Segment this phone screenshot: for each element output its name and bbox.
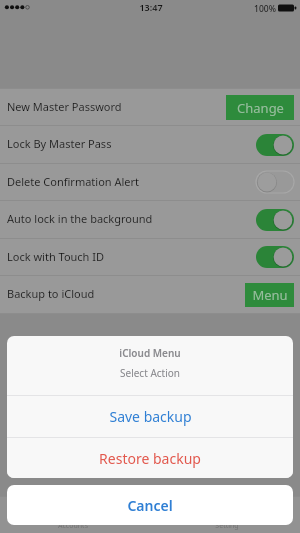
staticText: Lock with Touch ID [7, 249, 105, 264]
button[interactable]: Setting [180, 496, 274, 533]
button[interactable]: Accounts [26, 496, 120, 533]
button[interactable]: Restore backup [7, 438, 293, 478]
button[interactable]: Switch on [256, 134, 294, 156]
staticText: New Master Password [7, 99, 122, 114]
button[interactable]: New Master Password [0, 89, 300, 125]
staticText: Menu [252, 286, 288, 304]
staticText: Cancel [127, 496, 173, 515]
button[interactable]: Menu [245, 283, 294, 307]
staticText: Restore backup [99, 449, 201, 468]
staticText: Select Action [120, 366, 180, 380]
staticText: Save backup [109, 407, 192, 426]
staticText: iCloud Menu [119, 346, 181, 360]
staticText: Auto lock in the background [7, 211, 153, 226]
staticText: Lock By Master Pass [7, 136, 112, 151]
button[interactable]: Switch on [256, 246, 294, 268]
button[interactable]: Cancel [7, 485, 293, 525]
button[interactable]: Auto lock in the background [0, 201, 300, 238]
button[interactable]: Switch on [256, 209, 294, 231]
button[interactable]: Change [226, 95, 294, 120]
staticText: Delete Confirmation Alert [7, 174, 140, 189]
staticText: 100% [254, 3, 276, 15]
staticText: Accounts [58, 521, 88, 531]
button[interactable]: Lock By Master Pass [0, 126, 300, 163]
staticText: Backup to iCloud [7, 286, 95, 301]
button[interactable]: Lock with Touch ID [0, 239, 300, 275]
button[interactable]: Delete Confirmation Alert [0, 164, 300, 200]
staticText: Setting [215, 521, 239, 531]
staticText: 13:47 [139, 1, 163, 13]
button[interactable]: Backup to iCloud [0, 276, 300, 313]
button[interactable]: Switch off [256, 171, 294, 193]
button[interactable]: Save backup [7, 396, 293, 437]
staticText: Change [237, 99, 284, 117]
